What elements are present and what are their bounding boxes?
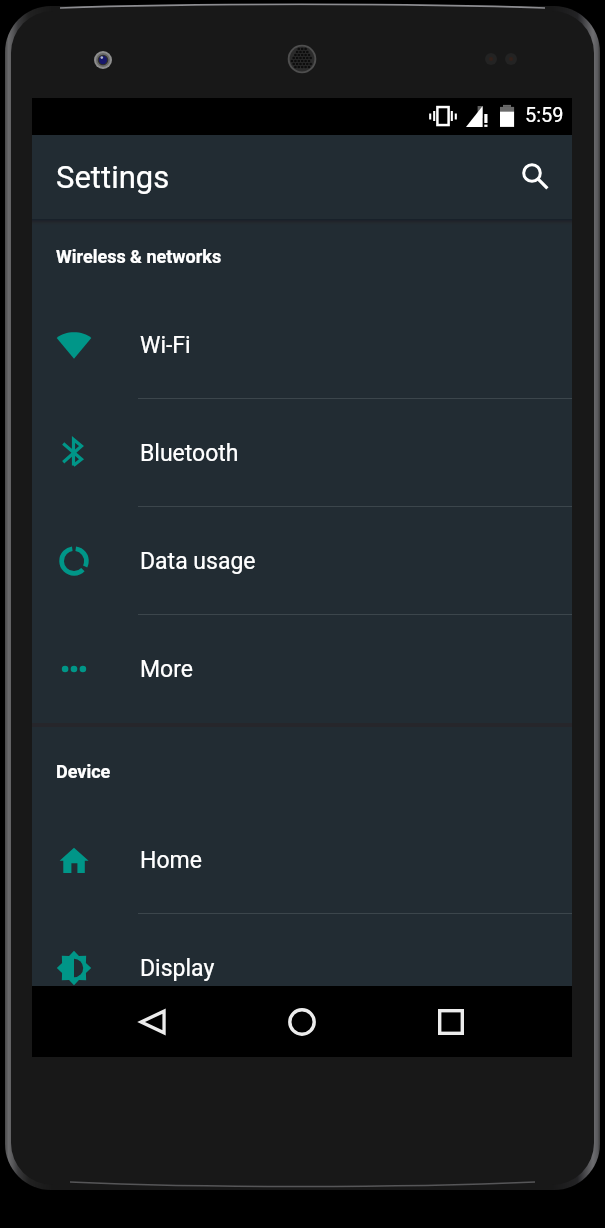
- staticText: Display: [140, 955, 215, 982]
- staticText: Home: [140, 847, 202, 874]
- button[interactable]: Data usage: [32, 507, 572, 615]
- button[interactable]: Display: [32, 914, 572, 1022]
- staticText: Wireless & networks: [56, 246, 222, 267]
- button[interactable]: Back: [125, 994, 181, 1050]
- staticText: 5:59: [525, 103, 564, 126]
- staticText: More: [140, 656, 193, 683]
- staticText: Settings: [56, 159, 170, 195]
- staticText: Data usage: [140, 548, 256, 575]
- button[interactable]: Home: [32, 806, 572, 914]
- button[interactable]: Search: [508, 149, 556, 197]
- button[interactable]: More: [32, 615, 572, 723]
- staticText: Wi-Fi: [140, 332, 191, 359]
- button[interactable]: Home: [274, 994, 330, 1050]
- staticText: Device: [56, 761, 111, 782]
- staticText: Bluetooth: [140, 440, 239, 467]
- button[interactable]: Recents: [423, 994, 479, 1050]
- button[interactable]: Wi-Fi: [32, 291, 572, 399]
- button[interactable]: Bluetooth: [32, 399, 572, 507]
